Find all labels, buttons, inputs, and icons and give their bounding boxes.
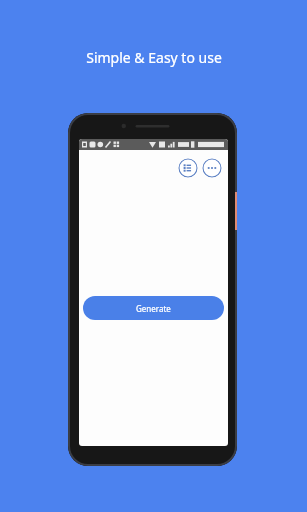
staticText: Simple & Easy to use (86, 48, 222, 67)
button[interactable]: More options (202, 158, 222, 178)
button[interactable]: Generate (83, 296, 224, 320)
staticText: Generate (136, 303, 171, 314)
button[interactable]: List view (178, 158, 198, 178)
